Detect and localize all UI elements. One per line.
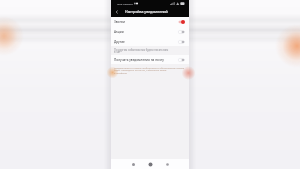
- button[interactable]: Звонки: [111, 17, 189, 27]
- button[interactable]: Другие: [111, 37, 189, 46]
- staticText: По другим событиям мы будем писать вам в…: [114, 48, 186, 54]
- staticText: Настройка уведомлений: [125, 9, 168, 14]
- staticText: Акции: [114, 30, 124, 34]
- button[interactable]: Главный экран: [146, 160, 154, 168]
- button[interactable]: Получать уведомления на почту: [111, 55, 189, 64]
- button[interactable]: Акции: [111, 27, 189, 37]
- button[interactable]: Назад: [129, 160, 137, 168]
- staticText: Мой самокат: [117, 2, 133, 5]
- button[interactable]: Назад: [111, 6, 122, 17]
- button[interactable]: Недавние: [163, 160, 171, 168]
- staticText: Другие: [114, 40, 125, 44]
- staticText: Получать уведомления на почту: [114, 58, 164, 62]
- staticText: Уведомления о новых сообщениях и обновле…: [114, 66, 187, 75]
- staticText: Звонки: [114, 20, 126, 24]
